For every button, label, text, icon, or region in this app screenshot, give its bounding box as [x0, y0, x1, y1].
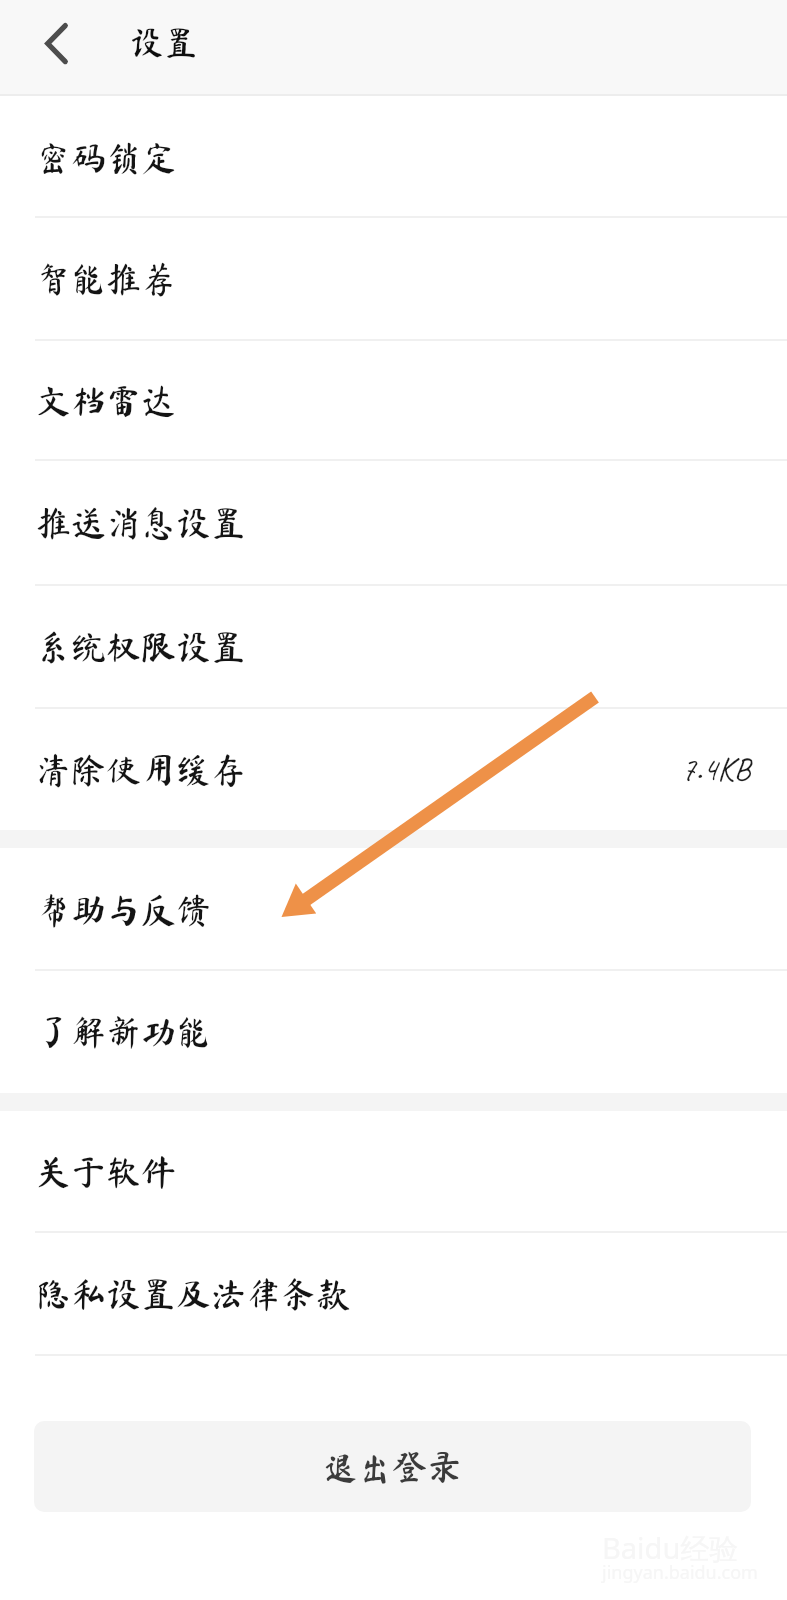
button[interactable]: 智能推荐 [0, 217, 787, 340]
button[interactable]: 隐私设置及法律条款 [0, 1232, 787, 1355]
staticText: 密码锁定 [36, 140, 177, 175]
staticText: 文档雷达 [36, 383, 177, 418]
staticText: 清除使用缓存 [36, 752, 247, 787]
staticText: 了解新功能 [36, 1014, 212, 1049]
staticText: 推送消息设置 [36, 505, 247, 540]
button[interactable]: 帮助与反馈 [0, 848, 787, 970]
staticText: 帮助与反馈 [36, 892, 212, 927]
staticText: 智能推荐 [36, 261, 177, 296]
button[interactable]: 清除使用缓存 [0, 708, 787, 830]
staticText: 关于软件 [36, 1154, 177, 1189]
button[interactable]: 推送消息设置 [0, 460, 787, 585]
staticText: 隐私设置及法律条款 [36, 1276, 352, 1311]
staticText: 设置 [130, 25, 198, 59]
button[interactable]: 密码锁定 [0, 97, 787, 217]
staticText: 退出登录 [322, 1449, 463, 1484]
button[interactable]: 退出登录 [34, 1421, 751, 1512]
staticText: 系统权限设置 [36, 629, 247, 664]
button[interactable]: 了解新功能 [0, 970, 787, 1093]
staticText: jingyan.baidu.com [602, 1560, 758, 1585]
button[interactable]: 关于软件 [0, 1111, 787, 1232]
button[interactable]: 系统权限设置 [0, 585, 787, 708]
button[interactable]: Back [12, 10, 88, 86]
button[interactable]: 文档雷达 [0, 340, 787, 460]
staticText: Baidu经验 [602, 1528, 739, 1568]
staticText: 7.4KB [681, 748, 751, 790]
